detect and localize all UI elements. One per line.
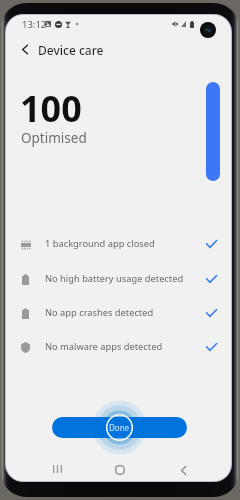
button[interactable]: Done: [52, 417, 187, 438]
staticText: Device care: [38, 42, 104, 58]
staticText: 13:12: [22, 18, 47, 31]
staticText: 1 background app closed: [45, 237, 155, 250]
staticText: Done: [109, 422, 130, 433]
button[interactable]: No malware apps detected: [6, 331, 231, 363]
button[interactable]: Back: [15, 39, 35, 59]
button[interactable]: 1 background app closed: [6, 228, 231, 260]
staticText: 100: [20, 84, 82, 133]
button[interactable]: Back: [173, 460, 193, 480]
button[interactable]: Home: [109, 459, 130, 480]
staticText: No high battery usage detected: [45, 272, 184, 285]
staticText: No app crashes detected: [45, 306, 154, 319]
button[interactable]: No high battery usage detected: [6, 263, 231, 295]
button[interactable]: Recent apps: [47, 459, 67, 479]
button[interactable]: No app crashes detected: [6, 297, 231, 329]
staticText: No malware apps detected: [45, 340, 163, 353]
staticText: Optimised: [21, 129, 87, 147]
